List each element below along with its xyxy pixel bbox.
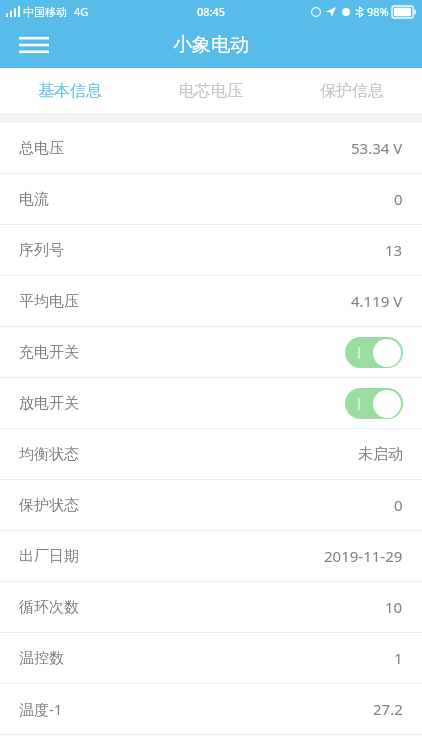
staticText: 10 xyxy=(385,597,403,617)
staticText: 电流 xyxy=(19,190,49,209)
button[interactable]: 基本信息 xyxy=(0,68,140,113)
staticText: 0 xyxy=(394,495,403,515)
staticText: 总电压 xyxy=(19,139,64,158)
staticText: 4G xyxy=(74,4,89,19)
button[interactable]: Switch on xyxy=(345,388,403,419)
button[interactable]: Switch on xyxy=(345,337,403,368)
staticText: 循环次数 xyxy=(19,598,79,617)
staticText: 08:45 xyxy=(197,4,226,19)
staticText: 出厂日期 xyxy=(19,547,79,566)
staticText: 小象电动 xyxy=(173,33,249,57)
staticText: 1 xyxy=(394,648,403,668)
button[interactable]: 序列号 xyxy=(0,225,422,276)
staticText: 放电开关 xyxy=(19,394,79,413)
staticText: 53.34 V xyxy=(351,138,403,158)
staticText: 电芯电压 xyxy=(179,81,243,101)
button[interactable]: 总电压 xyxy=(0,123,422,174)
button[interactable]: 循环次数 xyxy=(0,582,422,633)
button[interactable]: 均衡状态 xyxy=(0,429,422,480)
button[interactable]: 保护信息 xyxy=(281,68,422,113)
staticText: 27.2 xyxy=(373,699,403,719)
staticText: 4.119 V xyxy=(351,291,403,311)
staticText: 中国移动 xyxy=(23,5,67,19)
button[interactable]: 电芯电压 xyxy=(140,68,281,113)
button[interactable]: 放电开关 xyxy=(0,378,422,429)
staticText: 充电开关 xyxy=(19,343,79,362)
staticText: 13 xyxy=(385,240,403,260)
button[interactable]: 电流 xyxy=(0,174,422,225)
staticText: 保护状态 xyxy=(19,496,79,515)
button[interactable]: 充电开关 xyxy=(0,327,422,378)
staticText: 0 xyxy=(394,189,403,209)
staticText: 温控数 xyxy=(19,649,64,668)
staticText: 基本信息 xyxy=(38,81,102,101)
staticText: 未启动 xyxy=(358,445,403,464)
button[interactable]: 保护状态 xyxy=(0,480,422,531)
staticText: 2019-11-29 xyxy=(324,546,403,566)
staticText: 保护信息 xyxy=(320,81,384,101)
button[interactable]: 温度-1 xyxy=(0,684,422,735)
staticText: 温度-1 xyxy=(19,699,63,719)
staticText: 序列号 xyxy=(19,241,64,260)
button[interactable]: 出厂日期 xyxy=(0,531,422,582)
staticText: 均衡状态 xyxy=(19,445,79,464)
button[interactable]: 温控数 xyxy=(0,633,422,684)
staticText: 98% xyxy=(367,4,389,19)
button[interactable]: Menu xyxy=(12,23,56,67)
button[interactable]: 平均电压 xyxy=(0,276,422,327)
staticText: 平均电压 xyxy=(19,292,79,311)
